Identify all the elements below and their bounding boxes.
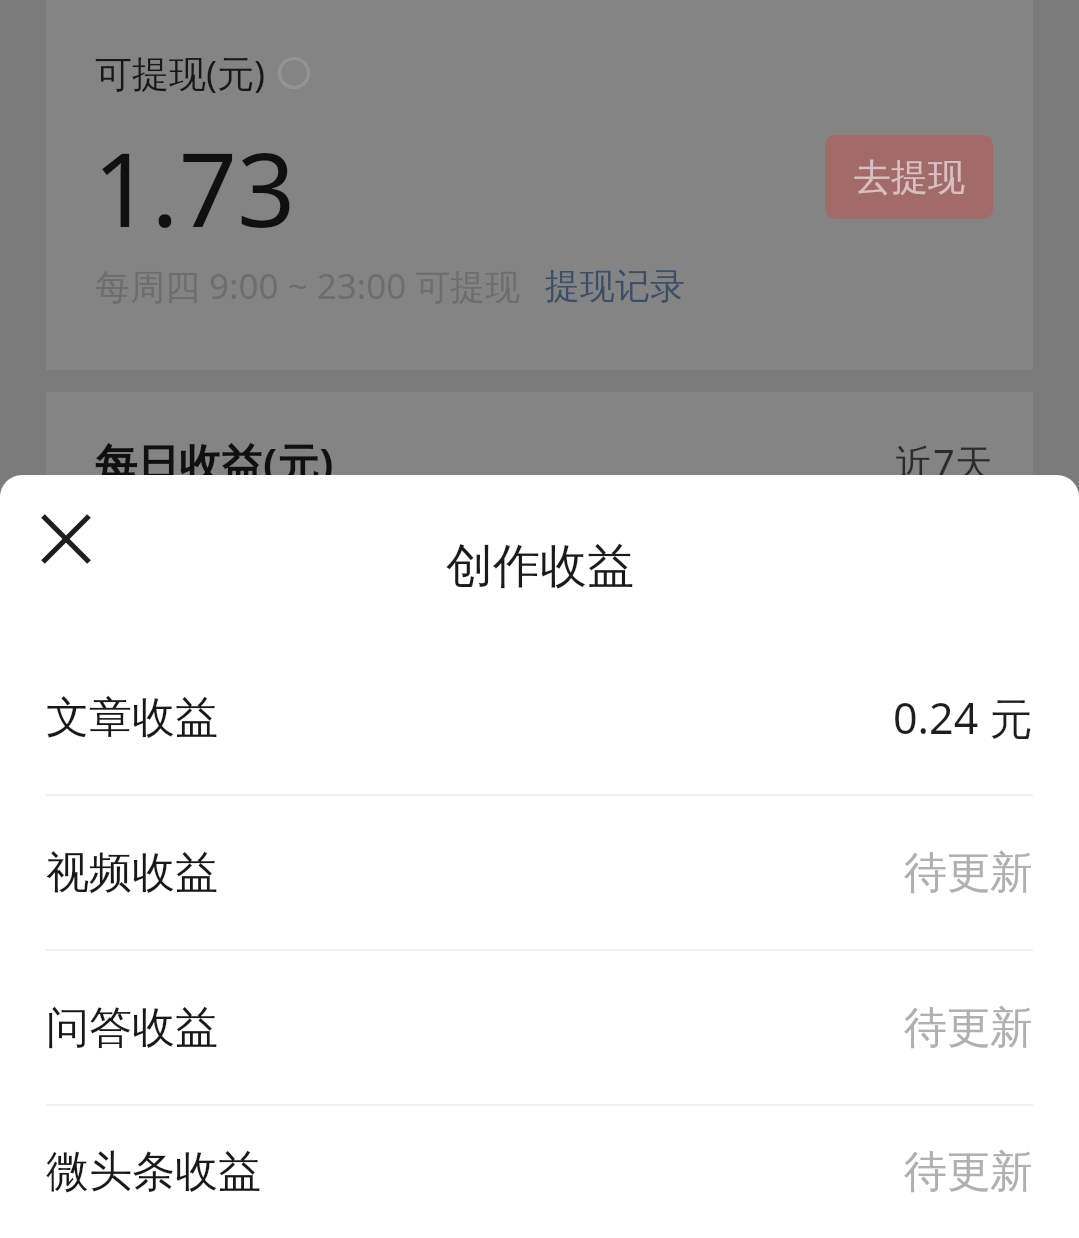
staticText: 视频收益 [46, 846, 218, 900]
staticText: 待更新 [904, 1001, 1033, 1055]
staticText: 1.73 [93, 118, 296, 257]
button[interactable]: 视频收益 [0, 796, 1079, 951]
staticText: 每日收益(元) [95, 434, 334, 491]
staticText: 提现记录 [545, 264, 685, 308]
staticText: 待更新 [904, 1145, 1033, 1199]
staticText: 问答收益 [46, 1001, 218, 1055]
staticText: 微头条收益 [46, 1145, 261, 1199]
button[interactable]: 微头条收益 [0, 1106, 1079, 1238]
button[interactable]: 问答收益 [0, 951, 1079, 1106]
staticText: 近7天 [895, 436, 993, 488]
staticText: 文章收益 [46, 691, 218, 745]
button[interactable]: Close [28, 501, 104, 577]
button[interactable]: 提现记录 [545, 264, 685, 308]
staticText: 可提现(元) [95, 47, 266, 98]
staticText: 每周四 9:00 ~ 23:00 可提现 [95, 262, 521, 310]
staticText: 待更新 [904, 846, 1033, 900]
button[interactable]: 文章收益 [0, 641, 1079, 796]
staticText: 0.24 元 [893, 688, 1033, 747]
button[interactable]: 去提现 [825, 135, 993, 219]
staticText: 去提现 [854, 154, 965, 201]
staticText: 创作收益 [446, 537, 634, 596]
